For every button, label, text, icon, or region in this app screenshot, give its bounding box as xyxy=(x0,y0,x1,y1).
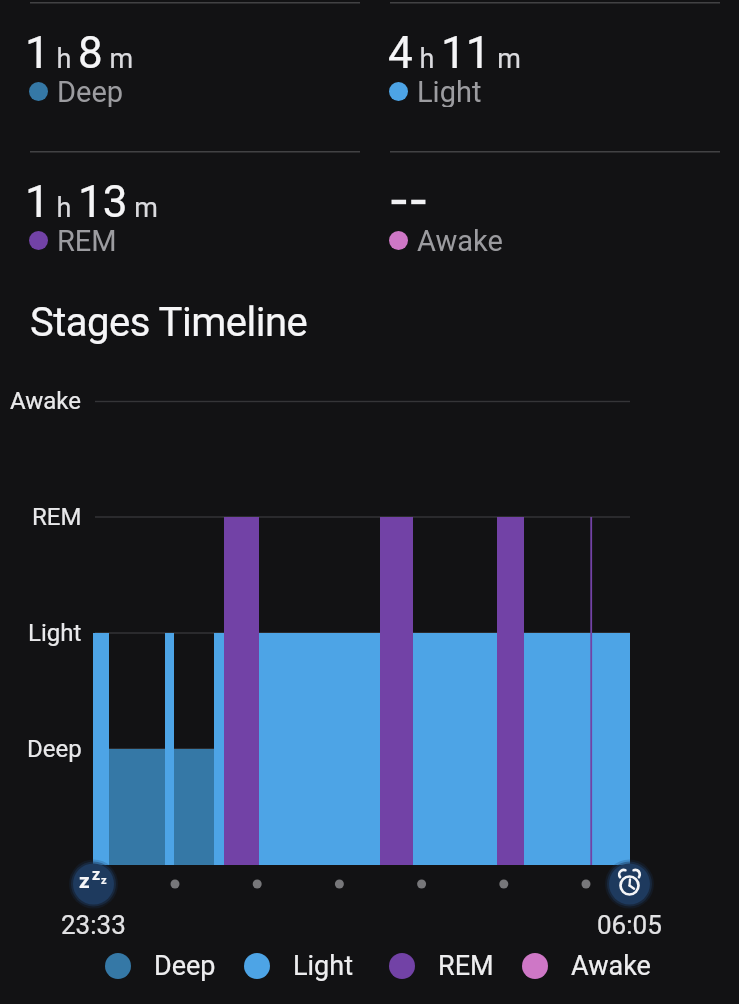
staticText: 1 h 13 m xyxy=(25,176,158,228)
button[interactable] xyxy=(602,857,656,911)
staticText: Deep xyxy=(57,75,124,107)
staticText: 1 h 8 m xyxy=(25,27,134,79)
staticText: z xyxy=(101,874,107,887)
button[interactable]: Deep xyxy=(29,75,124,107)
staticText: Light xyxy=(417,75,482,107)
staticText: Light xyxy=(28,619,82,647)
staticText: Light xyxy=(293,950,353,982)
staticText: 4 h 11 m xyxy=(388,27,521,79)
staticText: Deep xyxy=(27,735,82,763)
staticText: Stages Timeline xyxy=(30,299,308,346)
button[interactable]: Light xyxy=(389,75,482,107)
button[interactable]: Awake xyxy=(522,950,651,982)
button[interactable]: Deep xyxy=(105,950,216,982)
staticText: 23:33 xyxy=(61,910,126,940)
staticText: Deep xyxy=(154,950,216,982)
staticText: REM xyxy=(438,950,494,982)
staticText: Awake xyxy=(10,387,82,415)
button[interactable]: z xyxy=(67,857,121,911)
staticText: 06:05 xyxy=(597,910,662,940)
staticText: Awake xyxy=(417,224,503,256)
staticText: Awake xyxy=(571,950,651,982)
staticText: z xyxy=(79,869,90,894)
staticText: z xyxy=(92,865,101,884)
staticText: REM xyxy=(32,503,82,531)
staticText: REM xyxy=(57,224,117,256)
button[interactable]: Light xyxy=(244,950,353,982)
button[interactable]: Awake xyxy=(389,224,503,256)
button[interactable]: REM xyxy=(29,224,117,256)
button[interactable]: REM xyxy=(389,950,494,982)
